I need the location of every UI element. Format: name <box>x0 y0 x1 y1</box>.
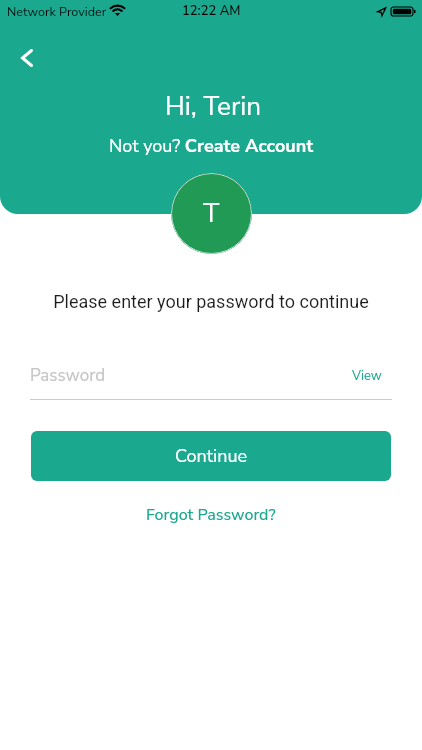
button[interactable]: Password <box>30 364 392 387</box>
staticText: Not you? Create Account <box>109 134 314 159</box>
button[interactable]: T <box>171 173 252 254</box>
staticText: Network Provider <box>7 3 107 20</box>
button[interactable]: Not you? Create Account <box>109 134 314 159</box>
button[interactable]: Forgot Password? <box>146 504 276 526</box>
staticText: View <box>352 367 382 385</box>
staticText: 12:22 AM <box>182 2 241 20</box>
staticText: Please enter your password to continue <box>53 291 369 312</box>
staticText: Password <box>30 364 352 387</box>
staticText: Continue <box>175 444 248 469</box>
staticText: Hi, Terin <box>165 89 262 124</box>
button[interactable]: Back <box>7 38 47 78</box>
button[interactable]: Continue <box>31 431 391 481</box>
staticText: T <box>203 195 220 232</box>
staticText: Forgot Password? <box>146 504 276 526</box>
